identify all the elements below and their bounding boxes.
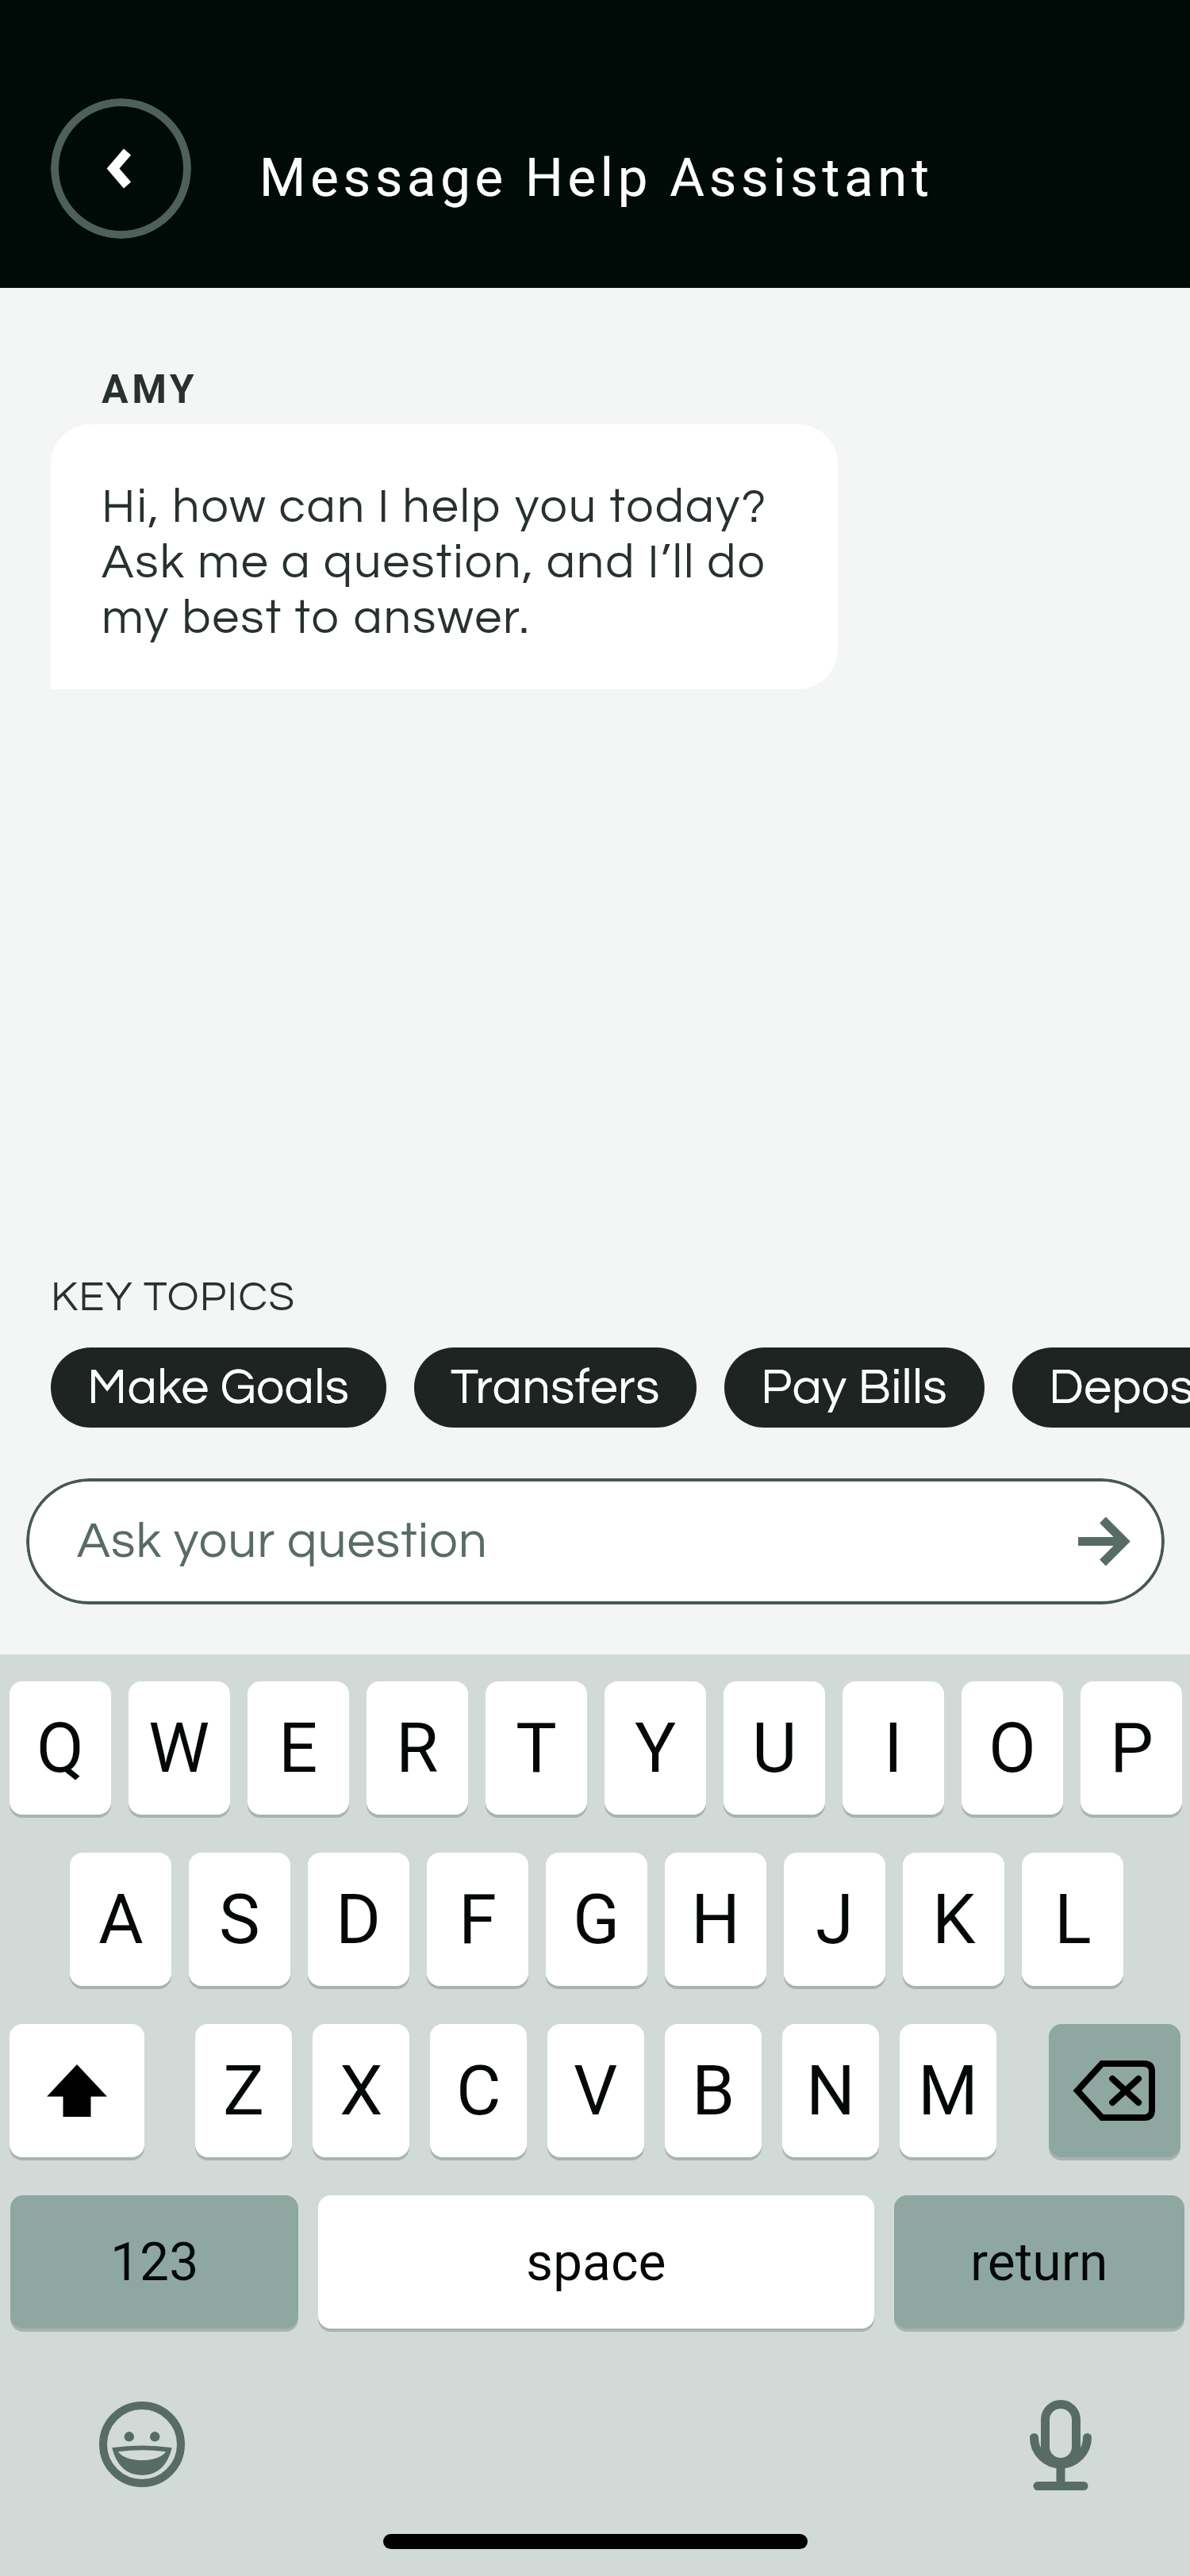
button[interactable]: Transfers (414, 1347, 697, 1428)
button[interactable]: R (367, 1681, 468, 1815)
staticText: G (573, 1879, 620, 1960)
staticText: Q (36, 1708, 84, 1788)
staticText: Deposits (1049, 1363, 1190, 1413)
staticText: O (988, 1708, 1036, 1788)
staticText: return (970, 2232, 1108, 2293)
staticText: A (98, 1879, 144, 1960)
button[interactable]: T (486, 1681, 587, 1815)
button[interactable]: L (1022, 1853, 1123, 1986)
other: Voice input (1030, 2400, 1092, 2489)
button[interactable]: V (547, 2024, 644, 2157)
button[interactable]: G (546, 1853, 647, 1986)
button[interactable]: O (962, 1681, 1063, 1815)
staticText: K (932, 1879, 976, 1960)
staticText: T (516, 1708, 557, 1788)
button[interactable]: K (903, 1853, 1004, 1986)
staticText: E (278, 1708, 318, 1788)
staticText: I (884, 1708, 903, 1788)
staticText: Z (223, 2050, 265, 2131)
staticText: R (396, 1708, 439, 1788)
staticText: space (526, 2232, 666, 2293)
button[interactable]: X (313, 2024, 409, 2157)
button[interactable]: Q (10, 1681, 111, 1815)
staticText: S (219, 1879, 260, 1960)
button[interactable]: U (724, 1681, 825, 1815)
staticText: Pay Bills (761, 1363, 948, 1413)
staticText: Make Goals (87, 1363, 350, 1413)
staticText: P (1110, 1708, 1154, 1788)
button[interactable]: C (430, 2024, 527, 2157)
button[interactable]: Backspace (1049, 2024, 1180, 2157)
other: Send (1078, 1520, 1124, 1563)
button[interactable]: N (782, 2024, 879, 2157)
staticText: C (456, 2050, 501, 2131)
staticText: AMY (102, 366, 198, 413)
staticText: D (336, 1879, 382, 1960)
other: Emoji (99, 2402, 185, 2487)
staticText: Ask your question (77, 1516, 488, 1567)
staticText: Y (635, 1708, 677, 1788)
button[interactable]: Shift (10, 2024, 144, 2157)
button[interactable]: W (129, 1681, 230, 1815)
button[interactable]: Make Goals (51, 1347, 386, 1428)
staticText: KEY TOPICS (51, 1276, 296, 1320)
staticText: H (691, 1879, 741, 1960)
button[interactable]: E (248, 1681, 349, 1815)
button[interactable]: space (318, 2195, 874, 2329)
button[interactable]: M (900, 2024, 996, 2157)
button[interactable]: Deposits (1012, 1347, 1190, 1428)
staticText: W (148, 1708, 210, 1788)
button[interactable]: return (894, 2195, 1184, 2329)
staticText: Hi, how can I help you today? Ask me a q… (102, 482, 768, 643)
button[interactable]: H (665, 1853, 766, 1986)
button[interactable]: Back (51, 98, 191, 239)
button[interactable]: Z (195, 2024, 292, 2157)
button[interactable]: B (665, 2024, 762, 2157)
button[interactable]: Ask your question (26, 1478, 1165, 1604)
button[interactable]: Pay Bills (724, 1347, 985, 1428)
button[interactable]: F (427, 1853, 528, 1986)
staticText: X (340, 2050, 383, 2131)
button[interactable]: P (1081, 1681, 1182, 1815)
staticText: Message Help Assistant (259, 147, 934, 209)
button[interactable]: S (189, 1853, 290, 1986)
staticText: F (459, 1879, 497, 1960)
staticText: 123 (110, 2232, 199, 2293)
button[interactable]: 123 (10, 2195, 298, 2329)
button[interactable]: Y (605, 1681, 706, 1815)
button[interactable]: J (784, 1853, 885, 1986)
staticText: V (574, 2050, 618, 2131)
staticText: J (816, 1879, 854, 1960)
button[interactable]: D (308, 1853, 409, 1986)
button[interactable]: I (843, 1681, 944, 1815)
staticText: Transfers (451, 1363, 660, 1413)
staticText: B (692, 2050, 735, 2131)
staticText: M (918, 2050, 978, 2131)
button[interactable]: A (70, 1853, 171, 1986)
staticText: L (1054, 1879, 1092, 1960)
staticText: N (806, 2050, 856, 2131)
staticText: U (752, 1708, 797, 1788)
